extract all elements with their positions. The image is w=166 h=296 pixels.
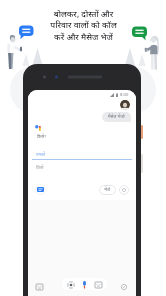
button[interactable]: Keyboard: [32, 280, 46, 294]
staticText: किसे?: [37, 134, 46, 140]
button[interactable]: भेजें: [99, 185, 116, 195]
button[interactable]: किसे?: [32, 131, 51, 142]
staticText: किसे: [36, 164, 44, 170]
button[interactable]: Account: [120, 100, 130, 110]
button[interactable]: Send as message: [35, 184, 46, 195]
button[interactable]: मैसेज भेजो: [102, 112, 131, 122]
staticText: बोलकर, दोस्तों और परिवार वालों को कॉल कर…: [47, 8, 120, 42]
staticText: 8:00: [120, 92, 129, 98]
button[interactable]: More options: [119, 185, 129, 195]
button[interactable]: Google Lens: [65, 279, 76, 290]
staticText: मैसेज भेजो: [108, 114, 125, 120]
button[interactable]: Keyboard input: [93, 279, 104, 290]
button[interactable]: Explore: [117, 280, 131, 294]
staticText: भेजें: [104, 187, 111, 193]
staticText: नमस्ते: [36, 151, 46, 157]
button[interactable]: Microphone: [79, 279, 90, 290]
